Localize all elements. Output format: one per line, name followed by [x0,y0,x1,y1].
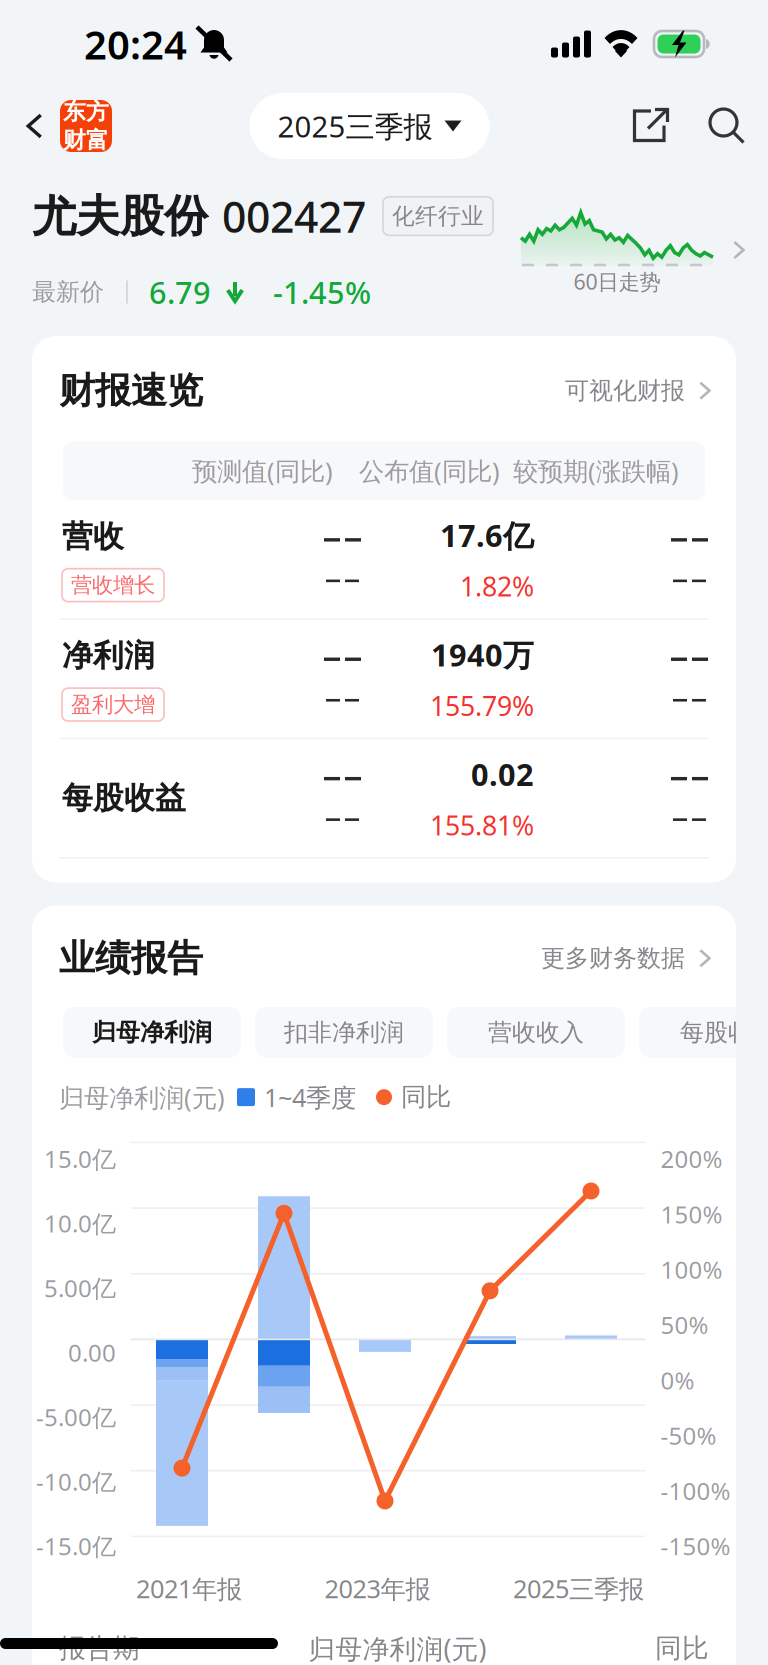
staticText: 归母净利润 [92,1017,212,1047]
staticText: 200% [660,1142,722,1175]
staticText: 预测值(同比) [192,454,333,488]
staticText: 化纤行业 [392,202,484,230]
staticText: 155.81% [430,807,534,843]
staticText: 报告期 [59,1632,140,1665]
staticText: 2025三季报 [513,1571,644,1606]
staticText: 2023年报 [324,1571,430,1606]
staticText: 公布值(同比) [359,454,500,488]
staticText: 002427 [222,187,366,245]
staticText: -50% [660,1419,716,1452]
staticText: -150% [660,1530,730,1562]
staticText: 150% [660,1198,722,1230]
staticText: 归母净利润(元) [59,1080,225,1114]
staticText: -1.45% [273,271,371,313]
staticText: 同比 [655,1632,709,1665]
button[interactable]: Back [0,94,112,158]
staticText: 10.0亿 [44,1207,116,1240]
staticText: 2025三季报 [277,106,432,146]
button[interactable]: 营收收入 [447,1007,625,1058]
staticText: 同比 [401,1081,451,1113]
button[interactable]: 扣非净利润 [255,1007,433,1058]
staticText: 2021年报 [136,1571,242,1606]
staticText: -10.0亿 [36,1465,116,1498]
staticText: -100% [660,1474,730,1507]
staticText: 15.0亿 [44,1142,116,1175]
staticText: 60日走势 [573,267,660,296]
staticText: 业绩报告 [59,936,203,981]
staticText: 20:24 [84,17,187,71]
staticText: 155.79% [430,687,534,724]
staticText: 财富 [63,126,109,155]
button[interactable]: 尤夫股份 [0,164,768,336]
button[interactable]: Share [627,107,675,144]
staticText: 17.6亿 [440,514,534,556]
staticText: 营收 [62,517,124,556]
button[interactable]: 2025三季报 [249,93,489,159]
staticText: -15.0亿 [36,1530,116,1562]
staticText: 最新价 [32,277,104,307]
staticText: 5.00亿 [44,1271,116,1304]
button[interactable]: 归母净利润 [63,1007,241,1058]
staticText: 净利润 [62,636,155,675]
staticText: 财报速览 [59,368,203,413]
staticText: 0.00 [68,1336,116,1369]
staticText: 1.82% [460,568,534,604]
staticText: 1940万 [431,634,534,675]
staticText: 每股收益 [62,779,186,817]
staticText: 每股收益 [680,1017,768,1047]
button[interactable]: 可视化财报 [565,376,714,406]
staticText: -5.00亿 [36,1401,116,1433]
button[interactable]: 更多财务数据 [541,943,714,973]
staticText: 较预期(涨跌幅) [513,454,679,488]
staticText: 盈利大增 [71,691,155,718]
staticText: 尤夫股份 [32,188,208,244]
staticText: 100% [660,1253,722,1286]
staticText: 东方 [63,97,109,126]
staticText: 归母净利润(元) [308,1630,486,1665]
staticText: 可视化财报 [565,376,685,406]
staticText: 0.02 [471,753,534,795]
staticText: 更多财务数据 [541,943,685,973]
staticText: 扣非净利润 [284,1017,404,1047]
staticText: 1~4季度 [264,1080,356,1114]
staticText: 营收增长 [71,572,155,599]
staticText: 50% [660,1308,708,1341]
staticText: 0% [660,1364,694,1396]
button[interactable]: Search [708,107,768,145]
staticText: 6.79 [149,271,211,313]
button[interactable]: 每股收益 [639,1007,768,1058]
staticText: 营收收入 [488,1017,584,1047]
